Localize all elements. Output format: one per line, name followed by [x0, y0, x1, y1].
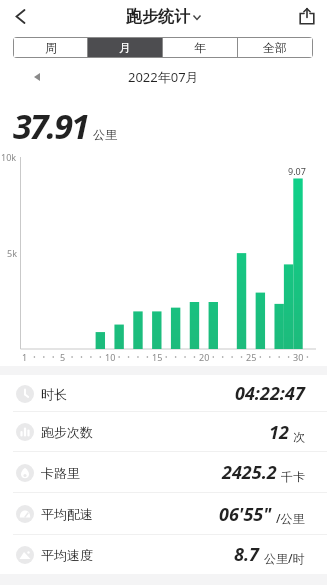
staticText: 平均配速: [41, 506, 93, 522]
staticText: 10: [105, 351, 116, 363]
staticText: 15: [152, 351, 163, 363]
staticText: 5k: [7, 247, 17, 259]
staticText: 8.7: [234, 542, 260, 567]
staticText: 04:22:47: [235, 381, 305, 406]
button[interactable]: 周: [14, 38, 87, 57]
staticText: 20: [199, 351, 210, 363]
button[interactable]: 跑步统计: [126, 7, 201, 27]
staticText: 次: [293, 429, 305, 444]
staticText: 2022年07月: [128, 68, 199, 86]
button[interactable]: 卡路里: [0, 452, 327, 493]
staticText: 卡路里: [41, 465, 80, 481]
staticText: 30: [293, 351, 304, 363]
button[interactable]: 时长: [0, 375, 327, 412]
staticText: 公里/时: [264, 550, 305, 566]
staticText: 9.07: [288, 165, 306, 177]
staticText: 全部: [263, 40, 287, 55]
staticText: 跑步统计: [126, 7, 190, 27]
staticText: 5: [60, 351, 66, 363]
button[interactable]: 月: [88, 38, 162, 57]
staticText: 公里: [93, 127, 117, 142]
button[interactable]: 全部: [238, 38, 312, 57]
staticText: 37.91: [13, 103, 88, 149]
staticText: 12: [269, 420, 289, 445]
staticText: 跑步次数: [41, 424, 93, 440]
button[interactable]: 年: [163, 38, 237, 57]
staticText: /公里: [276, 510, 305, 526]
staticText: 平均速度: [41, 547, 93, 563]
staticText: 年: [194, 40, 206, 55]
staticText: 时长: [41, 386, 67, 402]
staticText: 千卡: [281, 469, 305, 484]
staticText: 25: [246, 351, 257, 363]
button[interactable]: 平均配速: [0, 493, 327, 535]
button[interactable]: [287, 0, 327, 33]
button[interactable]: [26, 66, 48, 88]
button[interactable]: [0, 0, 40, 33]
staticText: 月: [119, 40, 131, 55]
staticText: 周: [45, 40, 57, 55]
button[interactable]: 跑步次数: [0, 412, 327, 452]
staticText: 06'55": [219, 502, 272, 527]
staticText: 1: [22, 351, 28, 363]
button[interactable]: 平均速度: [0, 535, 327, 574]
staticText: 2425.2: [222, 460, 277, 485]
staticText: 10k: [1, 151, 17, 163]
